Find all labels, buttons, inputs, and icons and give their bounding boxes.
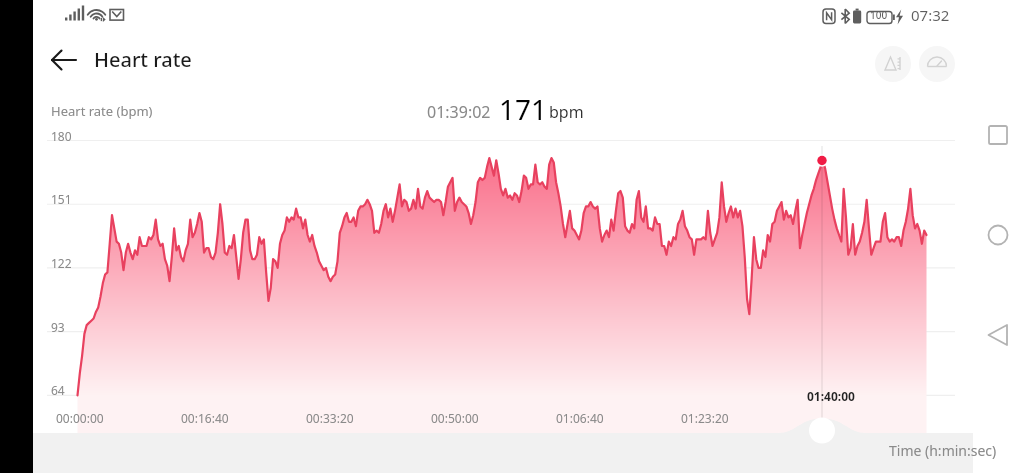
staticText: Heart rate — [94, 46, 192, 73]
staticText: 64 — [51, 382, 65, 398]
staticText: 07:32 — [911, 5, 950, 25]
staticText: 122 — [51, 255, 72, 271]
staticText: 151 — [51, 191, 72, 207]
staticText: Time (h:min:sec) — [889, 441, 997, 460]
button[interactable]: Chart analysis — [875, 46, 911, 82]
button[interactable]: Home — [974, 211, 1022, 259]
staticText: 171 — [499, 90, 548, 128]
staticText: 01:23:20 — [681, 410, 729, 426]
button[interactable]: Speed — [919, 46, 955, 82]
button[interactable]: Back — [43, 39, 85, 81]
staticText: 00:00:00 — [56, 410, 104, 426]
staticText: 00:50:00 — [431, 410, 479, 426]
button[interactable]: Back — [974, 311, 1022, 359]
staticText: 100 — [870, 8, 888, 22]
button[interactable]: Timeline scrubber — [808, 417, 836, 445]
staticText: 01:40:00 — [807, 388, 855, 404]
staticText: 01:06:40 — [556, 410, 604, 426]
staticText: 180 — [51, 128, 72, 144]
staticText: bpm — [549, 101, 584, 123]
staticText: 00:33:20 — [306, 410, 354, 426]
staticText: 00:16:40 — [181, 410, 229, 426]
staticText: Heart rate (bpm) — [51, 102, 153, 120]
button[interactable]: Recent apps — [974, 111, 1022, 159]
staticText: 01:39:02 — [427, 101, 491, 123]
staticText: 93 — [51, 319, 65, 335]
